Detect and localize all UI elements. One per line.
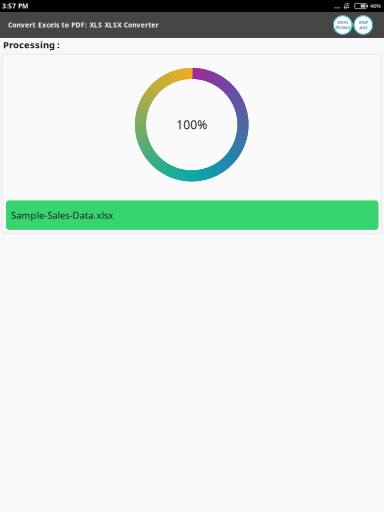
staticText: DRPU bbox=[337, 20, 348, 25]
staticText: 100% bbox=[176, 117, 207, 133]
staticText: PROMO bbox=[335, 25, 350, 30]
button[interactable]: Sample-Sales-Data.xlsx bbox=[6, 200, 378, 230]
staticText: ADS bbox=[359, 25, 367, 30]
button[interactable]: DRPU Promo bbox=[333, 15, 352, 35]
staticText: 46% bbox=[370, 2, 381, 10]
staticText: Convert Excels to PDF: XLS XLSX Converte… bbox=[8, 21, 158, 29]
button[interactable]: Stop Ads bbox=[353, 15, 373, 35]
staticText: Sample-Sales-Data.xlsx bbox=[11, 209, 113, 221]
staticText: Processing : bbox=[3, 38, 60, 51]
staticText: STOP bbox=[359, 20, 368, 25]
staticText: 3:57 PM bbox=[2, 2, 28, 10]
